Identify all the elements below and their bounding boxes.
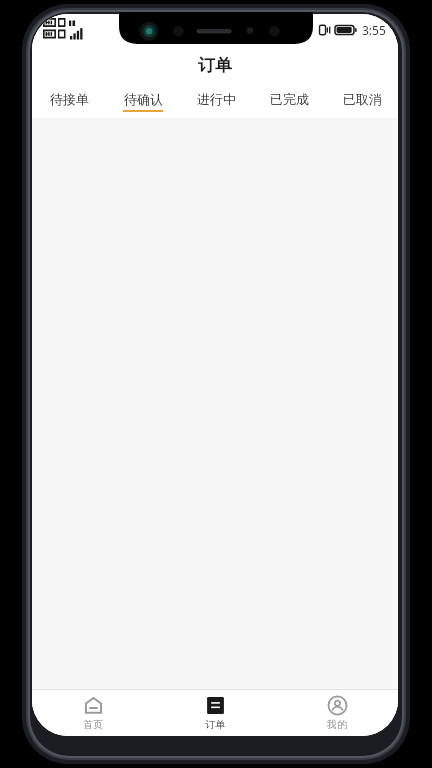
- staticText: 已取消: [343, 91, 382, 107]
- staticText: 已完成: [270, 91, 309, 107]
- staticText: 首页: [83, 718, 103, 731]
- staticText: 我的: [327, 718, 347, 731]
- staticText: 待接单: [50, 91, 89, 107]
- staticText: 3:55: [362, 22, 386, 38]
- button[interactable]: 已完成: [252, 84, 325, 118]
- staticText: 订单: [198, 55, 232, 76]
- button[interactable]: Profile: [276, 690, 398, 736]
- button[interactable]: Home: [32, 690, 154, 736]
- button[interactable]: 进行中: [179, 84, 252, 118]
- button[interactable]: 已取消: [325, 84, 398, 118]
- button[interactable]: 待接单: [32, 84, 106, 118]
- staticText: 进行中: [197, 91, 236, 107]
- staticText: 订单: [205, 718, 225, 731]
- button[interactable]: 待确认: [106, 84, 179, 118]
- staticText: 待确认: [124, 91, 163, 107]
- button[interactable]: Orders: [154, 690, 276, 736]
